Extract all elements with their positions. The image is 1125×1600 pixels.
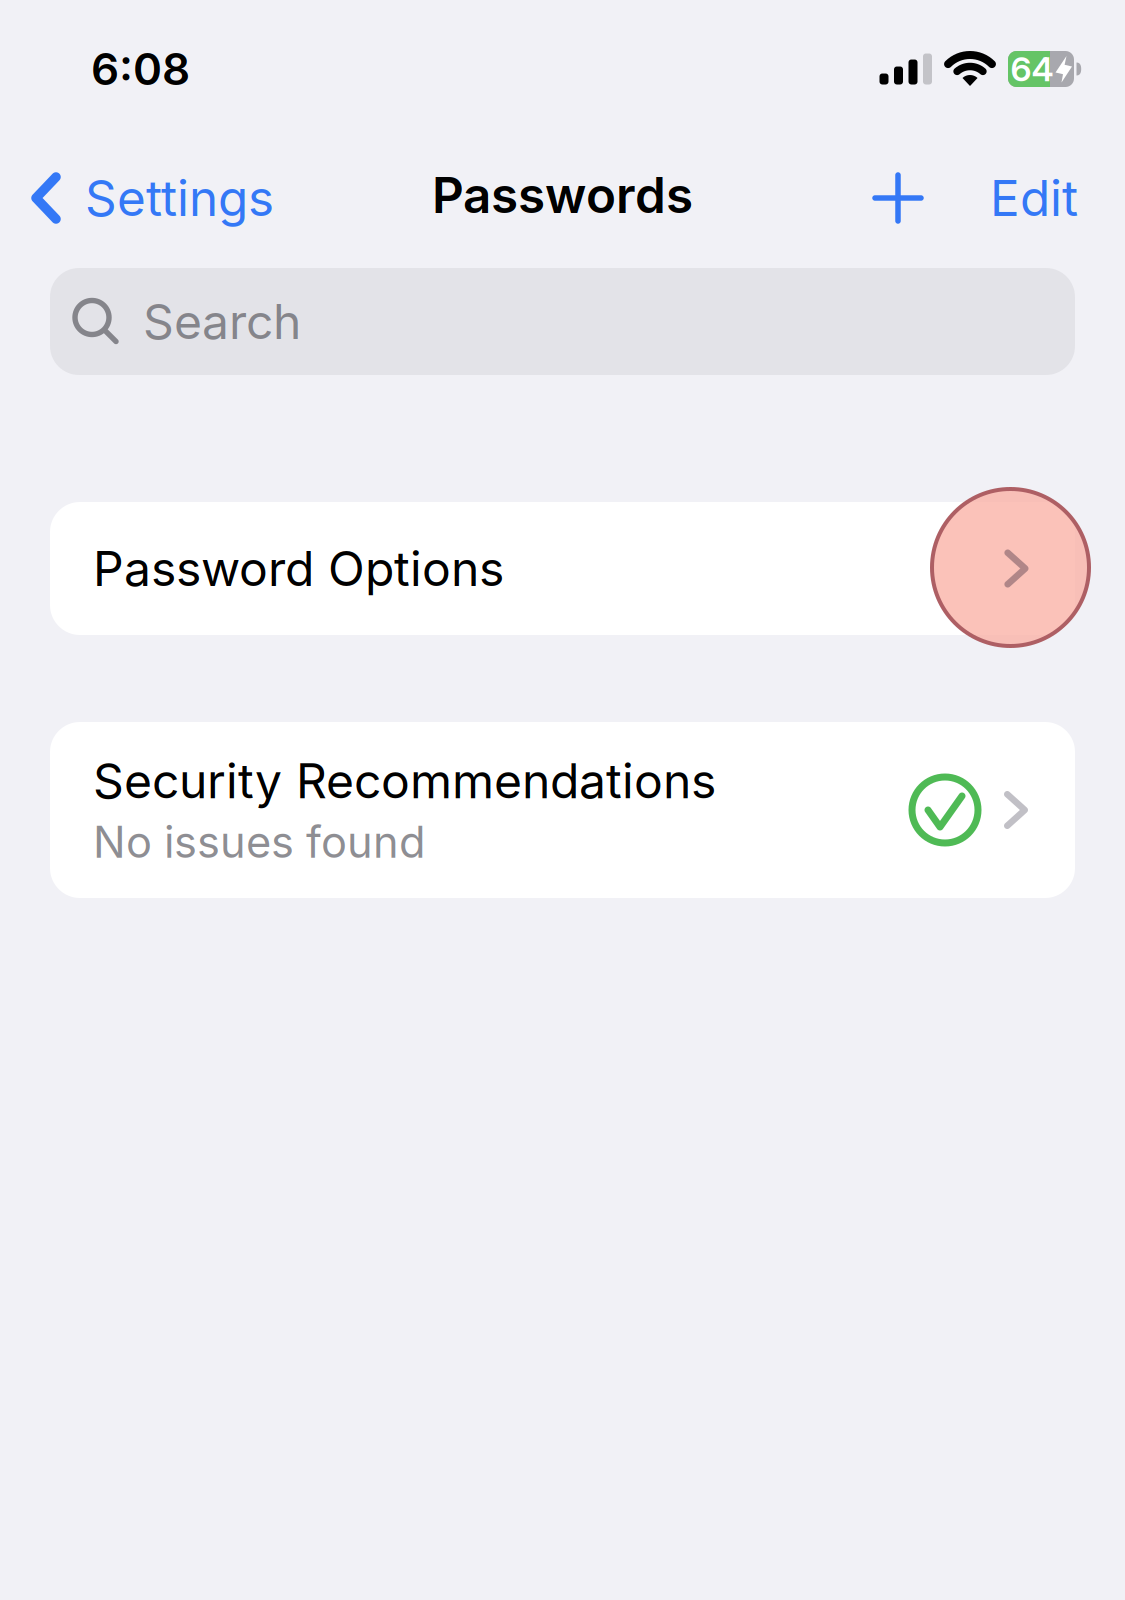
button[interactable]: Add <box>866 166 930 230</box>
staticText: Security Recommendations <box>93 752 716 810</box>
staticText: Password Options <box>93 539 504 598</box>
staticText: Search <box>143 292 301 351</box>
staticText: 64 <box>1010 48 1053 89</box>
staticText: Settings <box>85 168 274 228</box>
button[interactable]: Edit <box>990 168 1078 228</box>
staticText: Passwords <box>432 165 693 225</box>
button[interactable]: Security Recommendations <box>50 722 1075 898</box>
staticText: 6:08 <box>91 42 190 96</box>
button[interactable]: Search <box>50 268 1075 375</box>
button[interactable]: Settings <box>30 168 274 228</box>
staticText: No issues found <box>93 816 426 868</box>
button[interactable]: Password Options <box>50 502 1075 635</box>
staticText: Edit <box>990 168 1078 228</box>
